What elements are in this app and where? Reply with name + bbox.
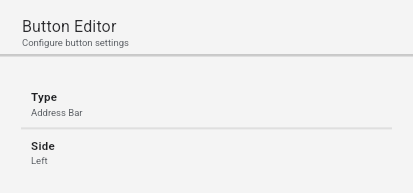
staticText: Address Bar [31, 108, 83, 118]
button[interactable]: Side [0, 130, 413, 175]
button[interactable]: Type [0, 84, 413, 127]
staticText: Button Editor [22, 17, 117, 36]
staticText: Left [31, 156, 48, 166]
staticText: Type [31, 91, 58, 103]
staticText: Side [31, 140, 56, 152]
staticText: Configure button settings [22, 38, 129, 48]
